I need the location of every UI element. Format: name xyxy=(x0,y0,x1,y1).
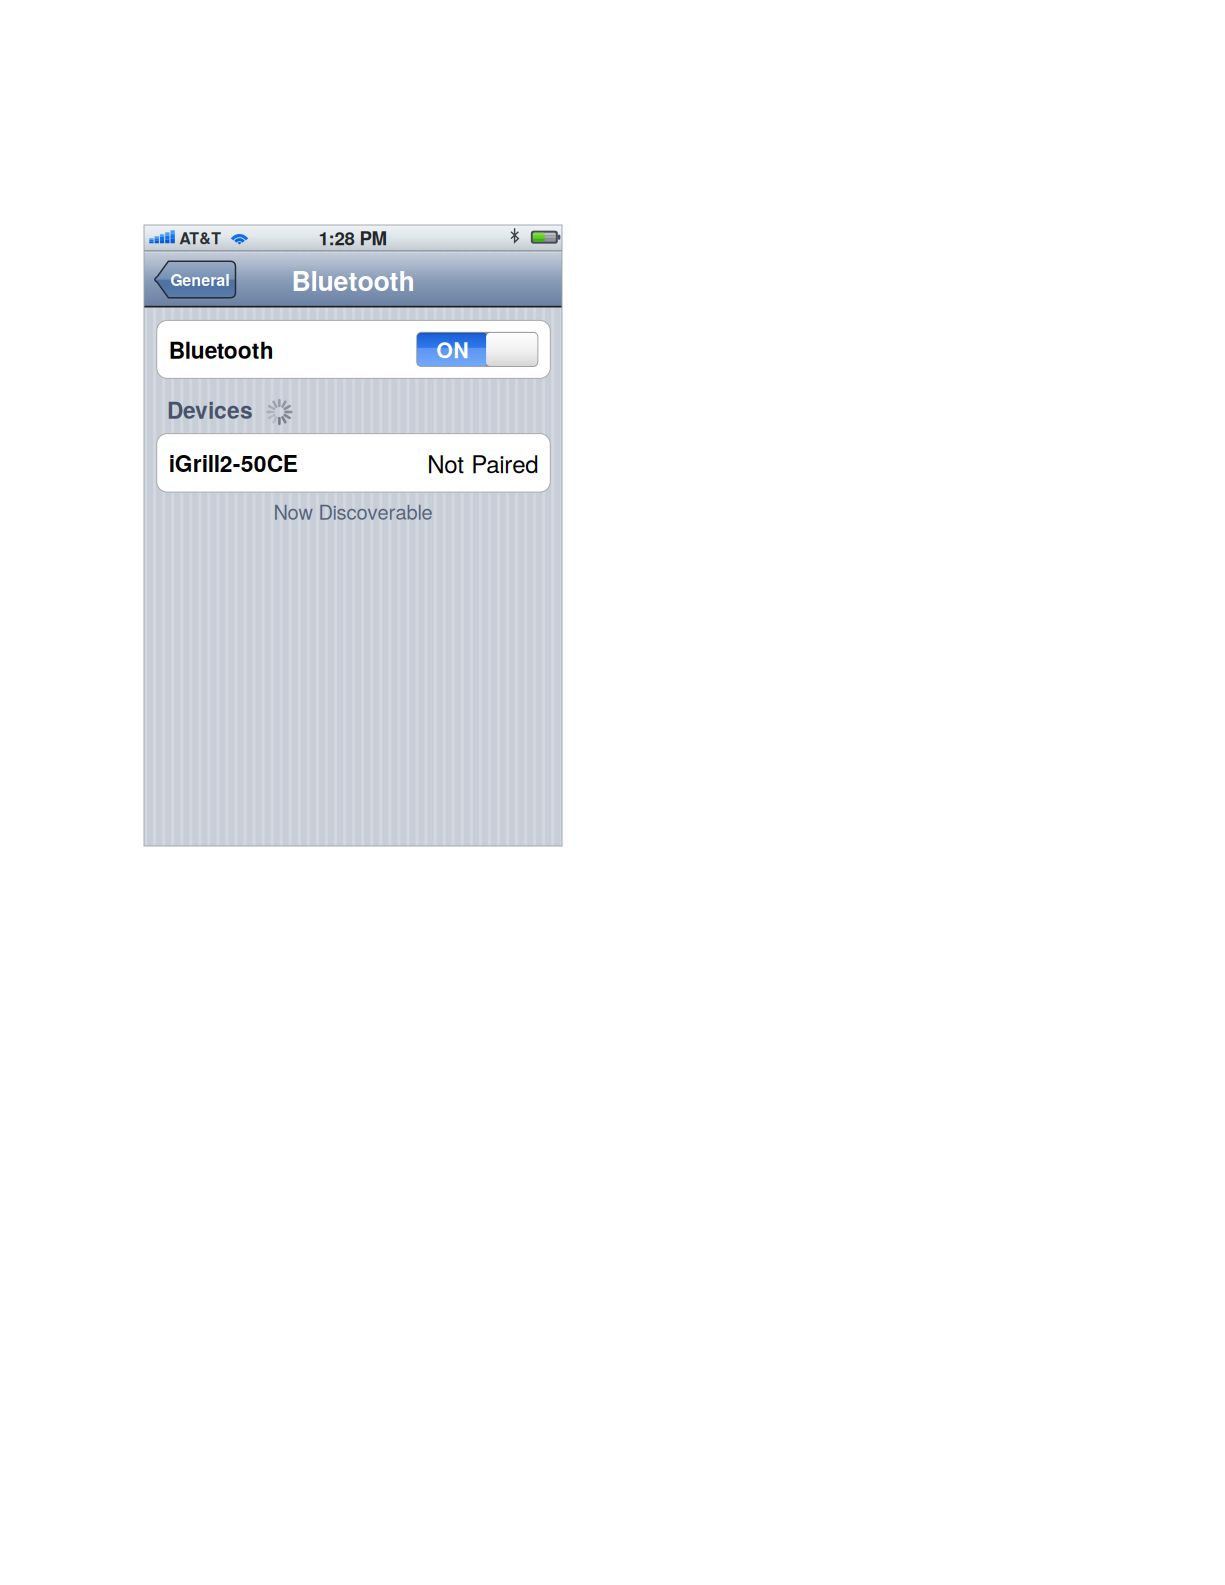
button[interactable]: Bluetooth xyxy=(157,320,550,378)
staticText: Bluetooth xyxy=(291,261,414,299)
staticText: AT&T xyxy=(179,226,221,249)
staticText: ON xyxy=(436,334,468,365)
staticText: Bluetooth xyxy=(169,333,274,366)
button[interactable]: iGrill2-50CE xyxy=(157,434,550,492)
staticText: 1:28 PM xyxy=(318,224,387,251)
staticText: Devices xyxy=(167,393,253,426)
staticText: Now Discoverable xyxy=(273,497,432,525)
staticText: General xyxy=(170,268,229,291)
button[interactable]: General xyxy=(152,260,236,298)
staticText: iGrill2-50CE xyxy=(169,447,298,479)
staticText: Not Paired xyxy=(427,446,538,480)
